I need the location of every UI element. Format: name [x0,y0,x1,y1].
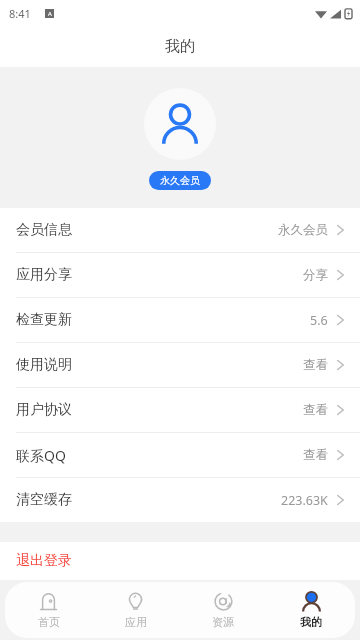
staticText: 永久会员 [160,174,200,187]
button[interactable]: 资源 [179,582,267,638]
button[interactable]: 使用说明 [0,343,360,387]
staticText: 查看 [303,402,328,418]
staticText: 会员信息 [16,221,72,239]
staticText: 清空缓存 [16,491,72,509]
staticText: 退出登录 [16,552,72,570]
button[interactable]: 会员信息 [0,208,360,252]
button[interactable]: Avatar [144,88,216,160]
staticText: 联系QQ [16,446,66,465]
staticText: 查看 [303,447,328,463]
button[interactable]: 应用 [92,582,179,638]
staticText: 用户协议 [16,401,72,419]
staticText: 应用 [125,615,147,629]
button[interactable]: 永久会员 [149,171,211,190]
button[interactable]: 联系QQ [0,433,360,477]
button[interactable]: 清空缓存 [0,478,360,522]
staticText: 8:41 [9,6,31,21]
staticText: 首页 [38,615,60,629]
staticText: 我的 [300,615,322,629]
staticText: 分享 [303,267,328,283]
button[interactable]: 我的 [267,582,355,638]
staticText: 检查更新 [16,311,72,329]
button[interactable]: 退出登录 [0,542,360,580]
staticText: 永久会员 [278,222,328,238]
staticText: 5.6 [310,312,328,329]
staticText: 查看 [303,357,328,373]
staticText: 使用说明 [16,356,72,374]
staticText: 我的 [165,37,195,56]
button[interactable]: 用户协议 [0,388,360,432]
button[interactable]: 首页 [5,582,92,638]
staticText: 223.63K [281,492,328,509]
button[interactable]: 检查更新 [0,298,360,342]
staticText: A [48,10,52,18]
staticText: 应用分享 [16,266,72,284]
staticText: 资源 [212,615,234,629]
button[interactable]: 应用分享 [0,253,360,297]
